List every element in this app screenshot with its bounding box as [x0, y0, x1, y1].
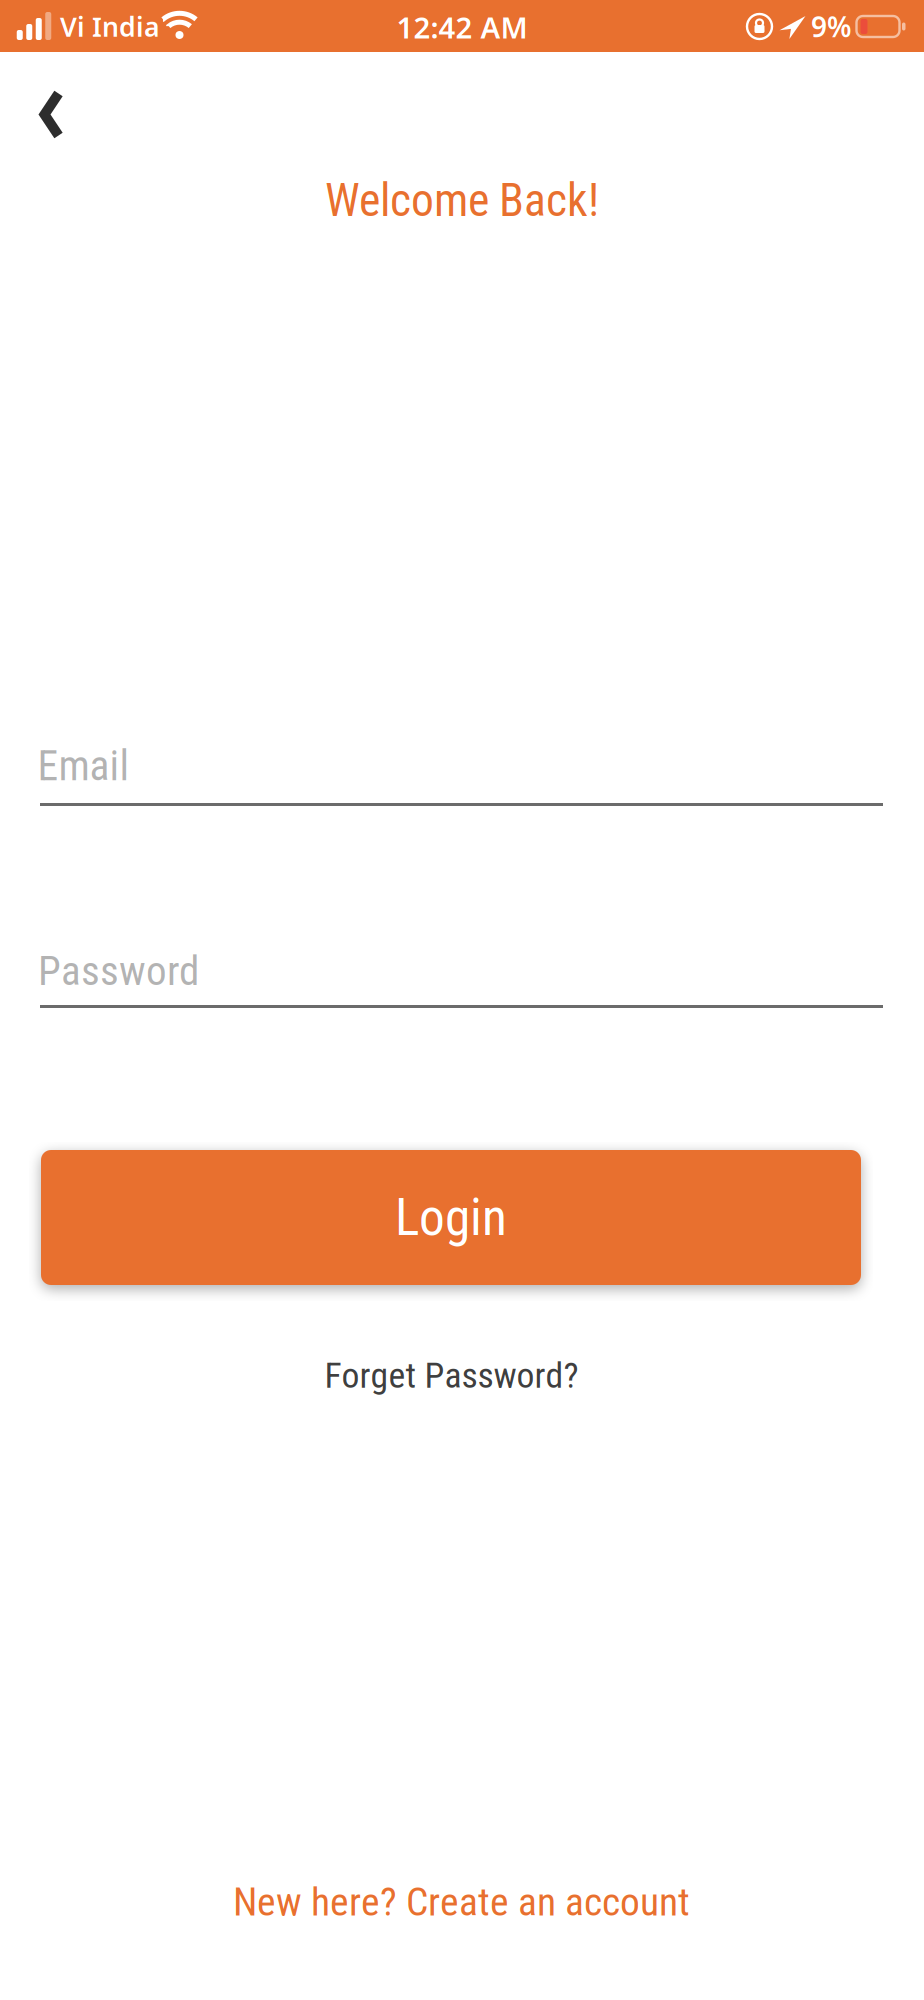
- staticText: Welcome Back!: [325, 174, 599, 227]
- staticText: Vi India: [60, 9, 160, 44]
- button[interactable]: Forget Password?: [316, 1347, 586, 1404]
- staticText: Email: [37, 742, 129, 790]
- staticText: New here? Create an account: [233, 1879, 690, 1925]
- staticText: 12:42 AM: [396, 7, 527, 46]
- staticText: Login: [395, 1187, 507, 1248]
- staticText: 9%: [811, 8, 852, 45]
- staticText: Password: [38, 947, 199, 995]
- button[interactable]: Back: [32, 85, 70, 143]
- button[interactable]: Login: [41, 1150, 861, 1285]
- button[interactable]: New here? Create an account: [225, 1871, 698, 1933]
- staticText: Forget Password?: [324, 1355, 578, 1396]
